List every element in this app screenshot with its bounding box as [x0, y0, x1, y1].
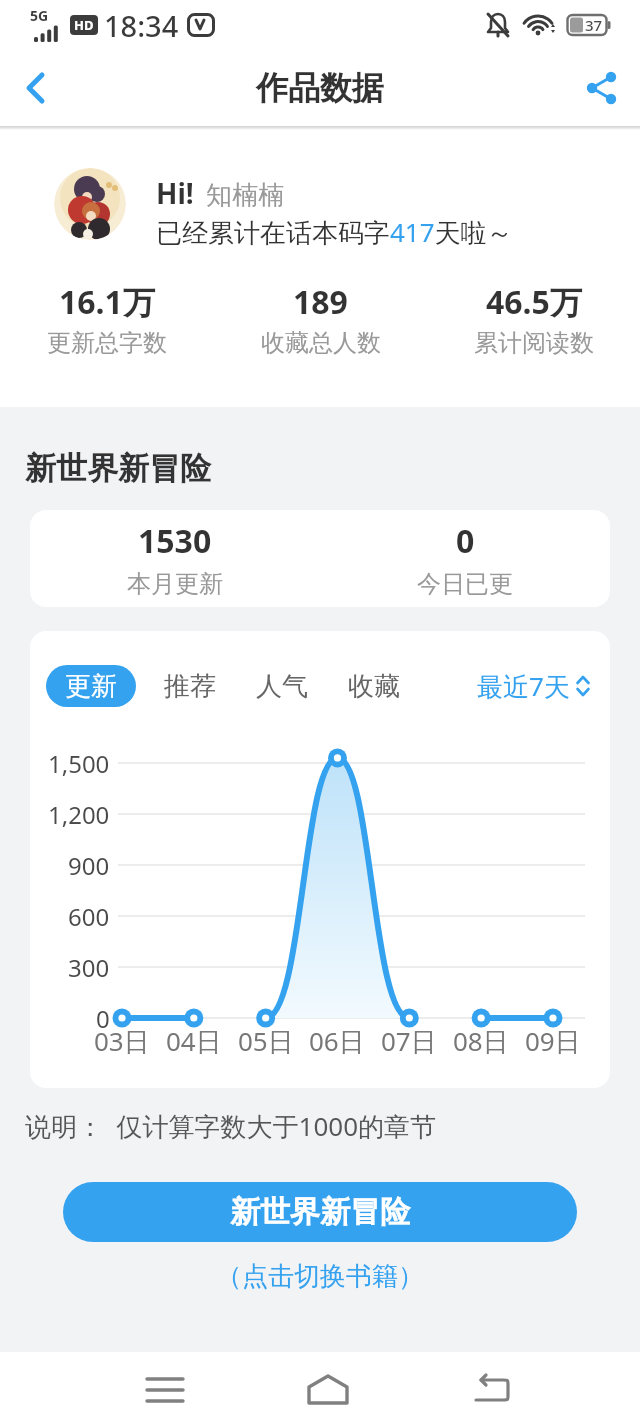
staticText: 46.5万 [486, 280, 582, 324]
staticText: 5G [30, 6, 49, 25]
staticText: 09日 [525, 1023, 581, 1059]
staticText: 新世界新冒险 [25, 449, 211, 488]
staticText: 1,500 [48, 747, 110, 780]
staticText: 本月更新 [127, 569, 223, 599]
staticText: 收藏总人数 [261, 328, 381, 358]
staticText: 推荐 [164, 670, 216, 703]
staticText: 0 [96, 1002, 110, 1035]
staticText: 说明： 仅计算字数大于1000的章节 [25, 1108, 437, 1144]
button[interactable]: 推荐 [164, 670, 216, 703]
button[interactable]: 更新 [46, 665, 136, 707]
staticText: 最近7天 [477, 668, 570, 704]
staticText: 1530 [138, 519, 212, 563]
staticText: （点击切换书籍） [216, 1260, 424, 1293]
staticText: Hi! [156, 174, 194, 212]
staticText: 今日已更 [417, 569, 513, 599]
button[interactable] [84, 1352, 246, 1428]
staticText: 600 [68, 900, 110, 933]
staticText: 更新总字数 [47, 328, 167, 358]
staticText: 06日 [309, 1023, 365, 1059]
staticText: 知楠楠 [206, 179, 284, 212]
button[interactable]: （点击切换书籍） [0, 1260, 640, 1293]
button[interactable]: 新世界新冒险 [63, 1182, 577, 1242]
staticText: 已经累计在话本码字417天啦～ [156, 214, 513, 246]
staticText: 16.1万 [59, 280, 155, 324]
staticText: 1,200 [48, 798, 110, 831]
staticText: 人气 [256, 670, 308, 703]
button[interactable] [14, 66, 58, 110]
staticText: 累计阅读数 [474, 328, 594, 358]
staticText: 07日 [381, 1023, 437, 1059]
staticText: 03日 [94, 1023, 150, 1059]
staticText: HD [74, 16, 94, 34]
staticText: 18:34 [104, 6, 179, 45]
button[interactable] [580, 66, 624, 110]
staticText: 0 [456, 519, 475, 563]
button[interactable]: 人气 [256, 670, 308, 703]
staticText: 收藏 [348, 670, 400, 703]
button[interactable]: 收藏 [348, 670, 400, 703]
button[interactable] [246, 1352, 409, 1428]
staticText: 189 [293, 280, 348, 324]
staticText: 37 [585, 15, 603, 35]
staticText: 更新 [65, 670, 117, 703]
button[interactable] [409, 1352, 572, 1428]
staticText: 900 [68, 849, 110, 882]
button[interactable]: 最近7天 [477, 668, 590, 704]
staticText: 04日 [166, 1023, 222, 1059]
staticText: 300 [68, 951, 110, 984]
staticText: 05日 [238, 1023, 294, 1059]
staticText: 作品数据 [256, 68, 384, 108]
staticText: 新世界新冒险 [230, 1193, 410, 1231]
staticText: 08日 [453, 1023, 509, 1059]
